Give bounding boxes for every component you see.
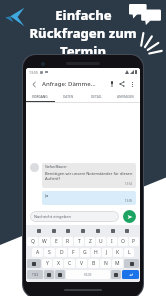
button[interactable]: DATEN [54, 92, 82, 101]
staticText: Rückfragen zum [29, 24, 137, 42]
button[interactable]: Key tool 2 [64, 227, 72, 235]
staticText: L [128, 249, 131, 256]
button[interactable]: Stefan Maurer [42, 163, 136, 188]
staticText: F [72, 249, 75, 256]
button[interactable]: Key tool 6 [123, 227, 131, 235]
staticText: X [57, 260, 60, 267]
button[interactable]: ANFRAGEN [111, 92, 140, 101]
staticText: N [104, 260, 108, 267]
staticText: Benötigen wir unsere Notenständer für di… [45, 171, 133, 181]
staticText: 13:55 [125, 199, 133, 203]
staticText: ANFRAGEN [117, 95, 134, 99]
staticText: Z [89, 238, 92, 245]
button[interactable]: Enter [122, 270, 139, 279]
button[interactable]: B [88, 259, 99, 268]
button[interactable]: Period [111, 270, 121, 279]
button[interactable]: Shift [27, 259, 41, 268]
button[interactable]: App logo [2, 4, 28, 30]
button[interactable]: Share [117, 79, 127, 89]
button[interactable]: V [76, 259, 87, 268]
button[interactable]: Key tool 1 [50, 227, 58, 235]
button[interactable]: Ja [42, 191, 136, 205]
button[interactable]: E [51, 237, 62, 246]
button[interactable]: Emoji [44, 270, 54, 279]
button[interactable]: Z [85, 237, 95, 246]
staticText: VORGANG [32, 95, 48, 99]
staticText: U [99, 238, 103, 245]
button[interactable]: W [39, 237, 50, 246]
button[interactable]: Q [27, 237, 38, 246]
button[interactable]: Space [66, 270, 110, 279]
staticText: D [60, 249, 64, 256]
button[interactable]: Attach [107, 79, 117, 89]
button[interactable]: Y [42, 259, 52, 268]
button[interactable]: K [113, 248, 123, 257]
staticText: K [116, 249, 120, 256]
staticText: Einfache [55, 6, 112, 24]
staticText: E [55, 238, 58, 245]
button[interactable]: P [129, 237, 139, 246]
button[interactable]: R [63, 237, 73, 246]
button[interactable]: A [32, 248, 43, 257]
staticText: C [68, 260, 72, 267]
staticText: ?123 [32, 273, 39, 277]
staticText: S [48, 249, 51, 256]
staticText: 13:54 [125, 182, 133, 186]
staticText: J [106, 249, 108, 256]
staticText: I [111, 238, 113, 245]
staticText: B [92, 260, 96, 267]
button[interactable]: Numbers [27, 270, 43, 279]
button[interactable]: U [96, 237, 106, 246]
staticText: Nachricht eingeben [34, 214, 71, 219]
button[interactable]: T [74, 237, 84, 246]
staticText: W [42, 238, 47, 245]
staticText: DATEN [63, 95, 74, 99]
staticText: DE-DE [84, 273, 92, 277]
button[interactable]: D [56, 248, 67, 257]
staticText: Anfrage: Dämme… [42, 80, 96, 88]
button[interactable]: Nachricht eingeben [30, 211, 119, 222]
button[interactable]: Key tool 4 [94, 227, 102, 235]
button[interactable]: N [100, 259, 111, 268]
button[interactable]: L [124, 248, 134, 257]
staticText: M [115, 260, 120, 267]
button[interactable]: Key tool 3 [79, 227, 87, 235]
button[interactable]: C [64, 259, 75, 268]
button[interactable]: Chat messages [129, 4, 161, 25]
button[interactable]: H [91, 248, 101, 257]
button[interactable]: More options [127, 79, 137, 89]
staticText: T [78, 238, 81, 245]
staticText: O [121, 238, 125, 245]
button[interactable]: DETAIL [82, 92, 111, 101]
button[interactable]: Key tool 0 [35, 227, 43, 235]
staticText: A [36, 249, 40, 256]
staticText: Q [31, 238, 35, 245]
staticText: Y [46, 260, 49, 267]
button[interactable]: S [44, 248, 55, 257]
staticText: V [80, 260, 84, 267]
button[interactable]: Back [29, 79, 40, 90]
button[interactable]: I [107, 237, 117, 246]
staticText: P [132, 238, 136, 245]
button[interactable]: J [102, 248, 112, 257]
button[interactable]: Language [55, 270, 65, 279]
staticText: G [83, 249, 87, 256]
button[interactable]: X [53, 259, 63, 268]
staticText: Stefan Maurer [45, 165, 67, 169]
button[interactable]: M [112, 259, 123, 268]
button[interactable]: Key tool 5 [109, 227, 117, 235]
staticText: DETAIL [91, 95, 102, 99]
staticText: Ja [45, 193, 49, 198]
button[interactable]: Send [123, 210, 136, 223]
staticText: 13:55 [29, 70, 38, 75]
button[interactable]: G [80, 248, 90, 257]
staticText: R [66, 238, 70, 245]
button[interactable]: VORGANG [26, 92, 54, 101]
button[interactable]: Backspace [124, 259, 139, 268]
staticText: H [94, 249, 98, 256]
button[interactable]: F [68, 248, 79, 257]
button[interactable]: O [118, 237, 128, 246]
staticText: Termin [60, 42, 106, 60]
